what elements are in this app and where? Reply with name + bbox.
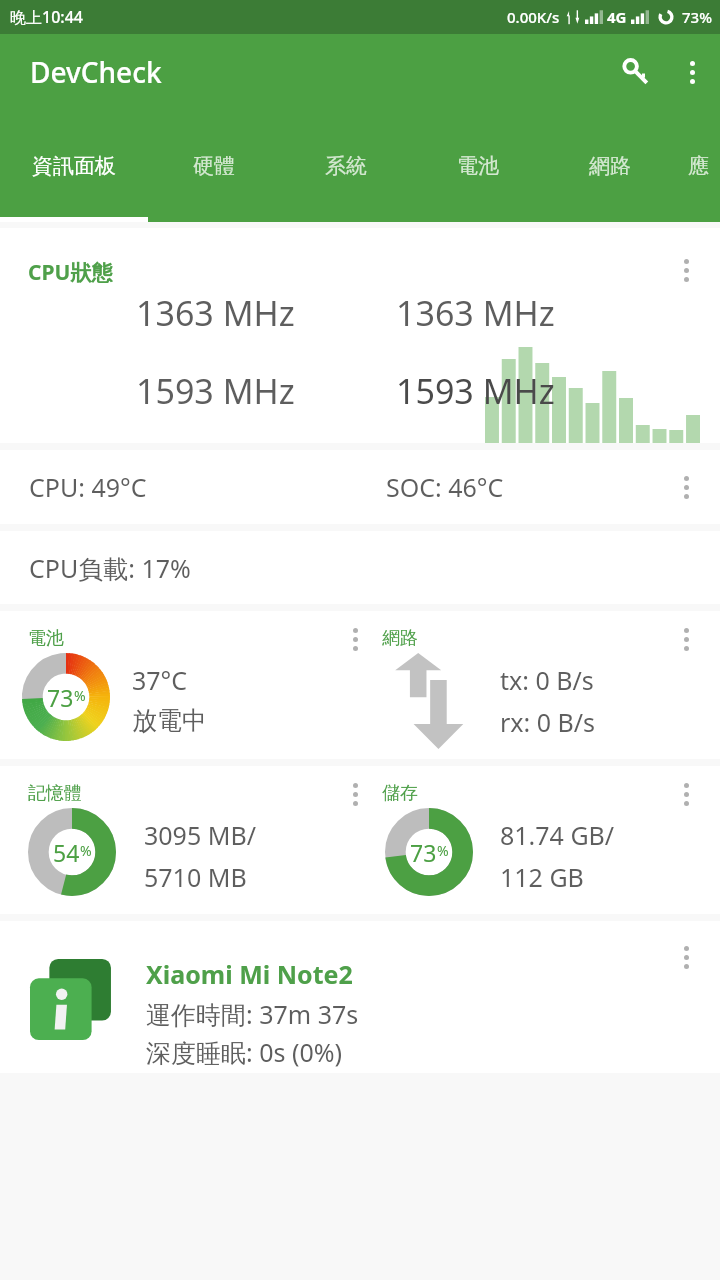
button[interactable]: 電池 bbox=[412, 110, 544, 222]
staticText: 1363 MHz bbox=[136, 290, 295, 336]
staticText: 73 bbox=[410, 837, 437, 868]
button[interactable]: 硬體 bbox=[148, 110, 280, 222]
staticText: 硬體 bbox=[193, 153, 235, 179]
button[interactable]: More options bbox=[664, 465, 708, 509]
staticText: 73 bbox=[47, 682, 74, 713]
button[interactable]: 73 bbox=[22, 653, 110, 741]
button[interactable]: 應 bbox=[676, 110, 720, 222]
staticText: Xiaomi Mi Note2 bbox=[146, 957, 353, 991]
staticText: 1593 MHz bbox=[396, 368, 555, 414]
staticText: CPU: 49°C bbox=[29, 470, 147, 504]
staticText: 記憶體 bbox=[28, 782, 82, 805]
staticText: 晚上10:44 bbox=[10, 6, 83, 28]
staticText: 0.00K/s bbox=[507, 7, 560, 27]
staticText: 54 bbox=[53, 837, 80, 868]
staticText: 電池 bbox=[28, 627, 64, 650]
staticText: tx: 0 B/s bbox=[500, 663, 594, 697]
staticText: 運作時間: 37m 37s bbox=[146, 997, 359, 1031]
staticText: 112 GB bbox=[500, 860, 584, 894]
button[interactable]: More options bbox=[664, 617, 708, 661]
button[interactable]: More options bbox=[333, 772, 377, 816]
button[interactable]: 系統 bbox=[280, 110, 412, 222]
staticText: 81.74 GB/ bbox=[500, 818, 615, 852]
staticText: 5710 MB bbox=[144, 860, 247, 894]
staticText: rx: 0 B/s bbox=[500, 705, 596, 739]
staticText: 4G bbox=[607, 7, 627, 27]
staticText: 放電中 bbox=[132, 705, 207, 736]
button[interactable]: More options bbox=[664, 935, 708, 979]
staticText: 網路 bbox=[589, 153, 631, 179]
button[interactable]: Xiaomi Mi Note2 bbox=[0, 921, 720, 1073]
staticText: 1593 MHz bbox=[136, 368, 295, 414]
button[interactable]: 網路 bbox=[544, 110, 676, 222]
button[interactable]: More options bbox=[664, 44, 720, 100]
button[interactable]: 資訊面板 bbox=[0, 110, 148, 222]
staticText: 電池 bbox=[457, 153, 499, 179]
staticText: % bbox=[80, 841, 92, 860]
staticText: 資訊面板 bbox=[32, 153, 116, 179]
button[interactable]: 73 bbox=[385, 808, 473, 896]
staticText: 網路 bbox=[382, 627, 418, 650]
staticText: DevCheck bbox=[30, 53, 162, 91]
staticText: % bbox=[437, 841, 449, 860]
staticText: SOC: 46°C bbox=[386, 470, 504, 504]
staticText: CPU負載: 17% bbox=[29, 551, 191, 585]
staticText: 系統 bbox=[325, 153, 367, 179]
staticText: CPU狀態 bbox=[28, 258, 113, 287]
staticText: % bbox=[74, 686, 86, 705]
button[interactable]: License key bbox=[608, 44, 664, 100]
staticText: 深度睡眠: 0s (0%) bbox=[146, 1035, 343, 1069]
staticText: 37°C bbox=[132, 663, 188, 697]
button[interactable]: More options bbox=[664, 772, 708, 816]
staticText: 1363 MHz bbox=[396, 290, 555, 336]
button[interactable]: More options bbox=[664, 248, 708, 292]
staticText: 儲存 bbox=[382, 782, 418, 805]
button[interactable]: 54 bbox=[28, 808, 116, 896]
staticText: 應 bbox=[688, 153, 709, 179]
staticText: 73% bbox=[682, 7, 712, 27]
staticText: 3095 MB/ bbox=[144, 818, 256, 852]
button[interactable]: More options bbox=[333, 617, 377, 661]
